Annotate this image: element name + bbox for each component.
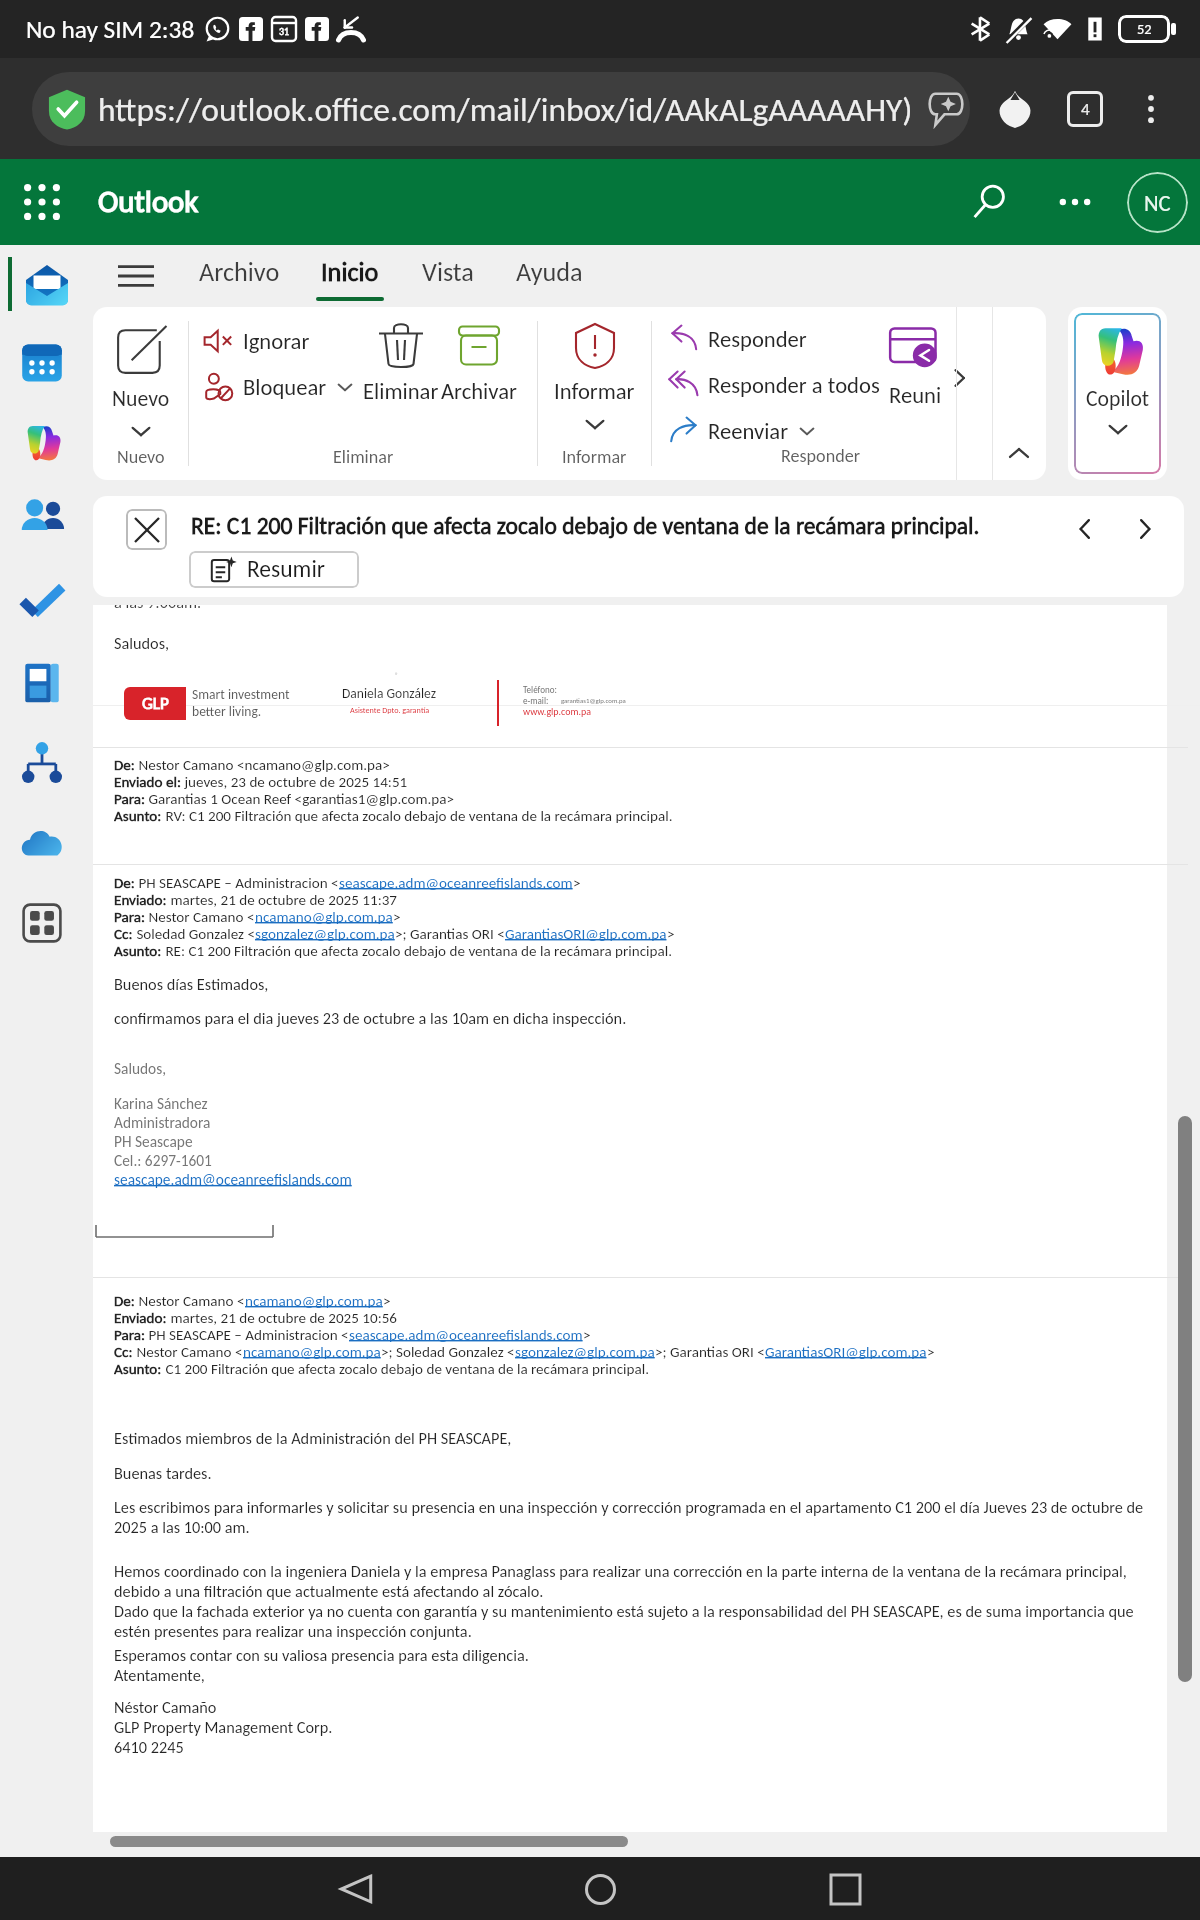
staticText: ncamano@glp.com.pa <box>245 1292 383 1309</box>
staticText: Ignorar <box>243 327 310 355</box>
staticText: Enviado: <box>114 1309 167 1326</box>
staticText: PH SEASCAPE – Administracion < <box>145 1326 349 1343</box>
button[interactable]: More options <box>1035 162 1115 242</box>
button[interactable]: Bloquear <box>203 371 355 403</box>
button[interactable]: Previous item <box>1062 506 1108 552</box>
button[interactable]: Eliminar <box>357 307 445 405</box>
button[interactable]: Responder <box>668 323 807 355</box>
staticText: Reuni <box>889 381 942 409</box>
button[interactable]: Menu <box>106 246 166 306</box>
button[interactable]: Recent apps <box>814 1858 876 1920</box>
button[interactable]: Secure connection <box>32 72 970 146</box>
button[interactable]: OneDrive <box>0 803 84 883</box>
staticText: Copilot <box>1086 385 1150 412</box>
staticText: Daniela González <box>342 685 437 702</box>
button[interactable]: Responder a todos <box>668 369 880 401</box>
button[interactable]: Close <box>126 509 167 550</box>
staticText: https://outlook.office.com/mail/inbox/id… <box>98 89 926 130</box>
staticText: No hay SIM <box>26 14 144 45</box>
button[interactable]: Ayuda <box>512 245 587 307</box>
button[interactable]: People <box>0 479 84 557</box>
button[interactable]: Next item <box>1122 506 1168 552</box>
staticText: Soledad Gonzalez < <box>133 925 255 942</box>
staticText: Karina Sánchez <box>114 1094 208 1113</box>
staticText: martes, 21 de octubre de 2025 10:56 <box>167 1309 397 1326</box>
other: Secure connection <box>46 88 88 130</box>
staticText: Enviado el: <box>114 773 181 790</box>
staticText: www.glp.com.pa <box>523 706 591 718</box>
button[interactable]: Reenviar <box>668 415 817 447</box>
staticText: jueves, 23 de octubre de 2025 14:51 <box>181 773 408 790</box>
button[interactable]: Vista <box>418 245 478 307</box>
staticText: Les escribimos para informarles y solici… <box>114 1497 1169 1537</box>
staticText: Cc: <box>114 925 133 942</box>
staticText: Informar <box>562 446 627 468</box>
button[interactable]: Tabs <box>1058 82 1112 136</box>
button[interactable]: Search <box>949 162 1029 242</box>
button[interactable]: Resumir <box>189 551 359 588</box>
staticText: Cc: <box>114 1343 133 1360</box>
staticText: RE: C1 200 Filtración que afecta zocalo … <box>162 942 672 959</box>
staticText: GLP <box>142 693 169 714</box>
button[interactable]: Ignorar <box>203 325 310 357</box>
staticText: Saludos, <box>114 1059 167 1078</box>
button[interactable]: Informar <box>538 307 651 437</box>
staticText: De: <box>114 874 135 891</box>
staticText: ncamano@glp.com.pa <box>255 908 393 925</box>
staticText: 4 <box>1081 99 1090 120</box>
staticText: > <box>383 1292 391 1309</box>
button[interactable]: Visio <box>0 723 84 803</box>
staticText: >; Soledad Gonzalez < <box>381 1343 515 1360</box>
button[interactable]: Mail <box>0 246 84 322</box>
staticText: Nestor Camano < <box>135 1292 245 1309</box>
button[interactable]: Home <box>569 1858 631 1920</box>
staticText: Estimados miembros de la Administración … <box>114 1428 512 1448</box>
staticText: Esperamos contar con su valiosa presenci… <box>114 1645 529 1665</box>
staticText: Archivar <box>441 377 517 405</box>
staticText: confirmamos para el dia jueves 23 de oct… <box>114 1008 627 1028</box>
staticText: Néstor Camaño <box>114 1697 217 1717</box>
staticText: GarantiasORI@glp.com.pa <box>765 1343 927 1360</box>
staticText: C1 200 Filtración que afecta zocalo deba… <box>162 1360 649 1377</box>
button[interactable]: Copilot <box>1074 313 1161 474</box>
staticText: Hemos coordinado con la ingeniera Daniel… <box>114 1561 1169 1601</box>
button[interactable]: Reuni <box>884 307 946 409</box>
staticText: Buenos días Estimados, <box>114 974 269 994</box>
button[interactable]: OneNote <box>0 643 84 723</box>
button[interactable]: To Do <box>0 557 84 643</box>
staticText: Administradora <box>114 1113 211 1132</box>
staticText: Ayuda <box>516 256 583 288</box>
staticText: Inicio <box>321 256 379 288</box>
button[interactable]: Collapse ribbon <box>1002 436 1036 470</box>
button[interactable]: NC <box>1127 172 1188 233</box>
staticText: Para: <box>114 790 145 807</box>
button[interactable]: Calendar <box>0 322 84 404</box>
button[interactable]: Brave Shields <box>988 82 1042 136</box>
staticText: Enviado: <box>114 891 167 908</box>
button[interactable]: Archivo <box>195 245 284 307</box>
staticText: NC <box>1144 189 1171 217</box>
staticText: Buenas tardes. <box>114 1463 212 1483</box>
staticText: Asunto: <box>114 942 162 959</box>
staticText: > <box>667 925 675 942</box>
staticText: Teléfono: <box>523 684 557 695</box>
staticText: Bloquear <box>243 373 327 401</box>
button[interactable]: Inicio <box>312 245 388 307</box>
button[interactable]: Back <box>325 1858 387 1920</box>
staticText: Resumir <box>247 555 325 584</box>
staticText: PH SEASCAPE – Administracion < <box>135 874 339 891</box>
button[interactable]: Copilot <box>0 404 84 479</box>
button[interactable]: More apps <box>0 883 84 963</box>
staticText: Cel.: 6297-1601 <box>114 1151 212 1170</box>
button[interactable]: Nuevo <box>93 307 188 444</box>
button[interactable]: Archivar <box>435 307 523 405</box>
staticText: Nuevo <box>117 446 165 468</box>
staticText: sgonzalez@glp.com.pa <box>255 925 395 942</box>
button[interactable]: App launcher <box>0 159 84 245</box>
staticText: Archivo <box>199 256 280 288</box>
button[interactable]: More options <box>1124 82 1178 136</box>
staticText: sgonzalez@glp.com.pa <box>515 1343 655 1360</box>
staticText: Para: <box>114 1326 145 1343</box>
staticText: RV: C1 200 Filtración que afecta zocalo … <box>162 807 673 824</box>
staticText: 6410 2245 <box>114 1737 184 1757</box>
